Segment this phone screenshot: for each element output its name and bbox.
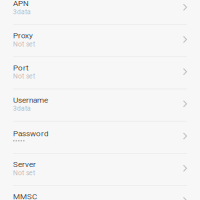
staticText: Port bbox=[13, 63, 29, 72]
staticText: Not set bbox=[13, 169, 35, 177]
button[interactable]: MMSC bbox=[0, 186, 200, 200]
staticText: Username bbox=[13, 95, 48, 105]
staticText: Not set bbox=[13, 72, 35, 80]
staticText: 3data bbox=[13, 8, 31, 16]
staticText: Proxy bbox=[13, 31, 33, 40]
staticText: 3data bbox=[13, 105, 31, 112]
staticText: Not set bbox=[13, 40, 35, 48]
button[interactable]: Port bbox=[0, 57, 200, 89]
button[interactable]: Proxy bbox=[0, 25, 200, 56]
button[interactable]: APN bbox=[0, 0, 200, 24]
staticText: Server bbox=[13, 160, 36, 169]
button[interactable]: Server bbox=[0, 154, 200, 185]
button[interactable]: Password bbox=[0, 121, 200, 153]
staticText: MMSC bbox=[13, 192, 37, 200]
staticText: Password bbox=[13, 129, 49, 138]
button[interactable]: Username bbox=[0, 89, 200, 121]
staticText: APN bbox=[13, 0, 29, 8]
